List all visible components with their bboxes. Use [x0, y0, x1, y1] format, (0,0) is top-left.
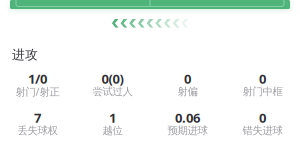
button[interactable]: 7: [0, 111, 75, 137]
staticText: 进攻: [12, 47, 38, 63]
staticText: 预期进球: [167, 124, 207, 137]
button[interactable]: 1: [75, 111, 150, 137]
staticText: 丢失球权: [17, 124, 57, 137]
staticText: 0(0): [101, 70, 123, 87]
staticText: 错失进球: [242, 124, 282, 137]
staticText: 0: [184, 70, 191, 87]
staticText: 1/0: [28, 70, 47, 87]
staticText: 1: [109, 109, 116, 126]
staticText: 射门中框: [242, 85, 282, 98]
button[interactable]: 1/0: [0, 72, 75, 98]
staticText: 0: [259, 70, 266, 87]
button[interactable]: 0: [225, 72, 300, 98]
button[interactable]: 0: [150, 72, 225, 98]
staticText: 0.06: [175, 109, 200, 126]
staticText: 0: [259, 109, 266, 126]
staticText: 尝试过人: [92, 85, 132, 98]
button[interactable]: 0(0): [75, 72, 150, 98]
staticText: 射门/射正: [15, 84, 59, 99]
button[interactable]: 0.06: [150, 111, 225, 137]
button[interactable]: Match scoreboard: [0, 0, 300, 9]
staticText: 7: [34, 109, 41, 126]
button[interactable]: Swipe for previous stats: [0, 9, 300, 28]
button[interactable]: 0: [225, 111, 300, 137]
staticText: 越位: [102, 124, 122, 137]
staticText: 射偏: [177, 85, 197, 98]
